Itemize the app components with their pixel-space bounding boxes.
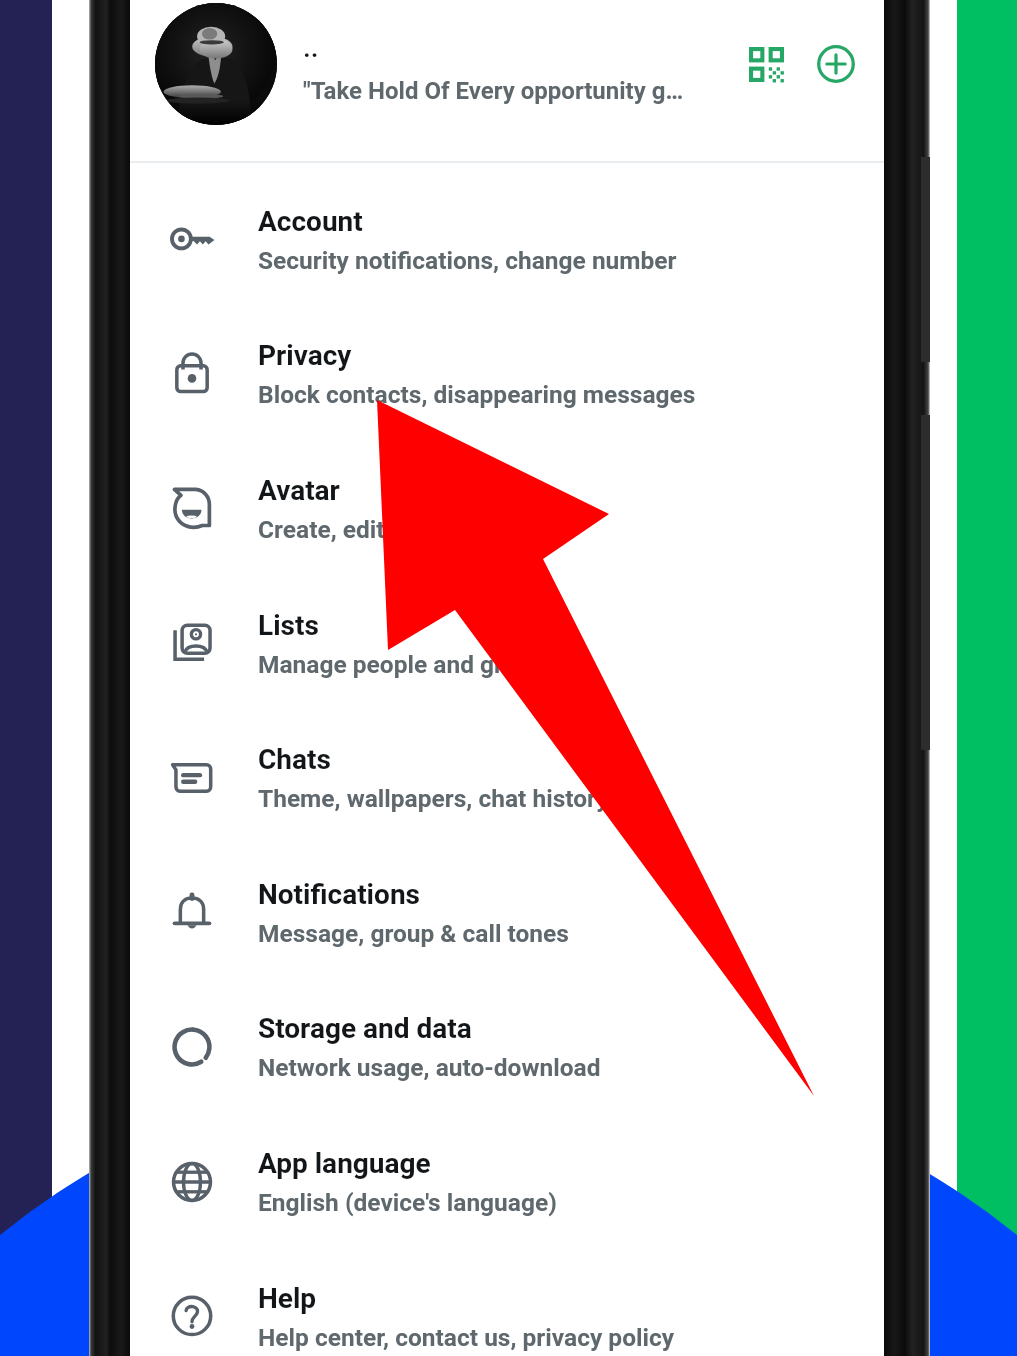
button[interactable]: Privacy [130,306,884,441]
staticText: Security notifications, change number [258,246,677,275]
button[interactable]: Account [130,172,884,307]
staticText: Account [258,205,363,238]
staticText: English (device's language) [258,1188,557,1217]
staticText: Avatar [258,474,340,507]
staticText: Create, edit, profile photo [258,515,537,544]
button[interactable]: Add account [800,28,872,100]
staticText: "Take Hold Of Every opportunity g… [303,77,684,105]
staticText: Storage and data [258,1012,472,1045]
staticText: .. [303,31,319,64]
button[interactable]: Storage and data [130,979,884,1114]
staticText: Block contacts, disappearing messages [258,380,696,409]
staticText: Notifications [258,878,420,911]
staticText: Lists [258,609,319,642]
staticText: Message, group & call tones [258,919,569,948]
button[interactable]: Help [130,1249,884,1356]
button[interactable]: Lists [130,576,884,711]
button[interactable]: Chats [130,710,884,845]
staticText: Network usage, auto-download [258,1053,601,1082]
staticText: Manage people and groups [258,650,557,679]
button[interactable]: QR code [730,28,802,100]
button[interactable]: .. [130,0,884,161]
button[interactable]: Notifications [130,845,884,980]
staticText: Chats [258,743,331,776]
staticText: Help [258,1282,317,1315]
button[interactable]: App language [130,1114,884,1249]
staticText: App language [258,1147,431,1180]
staticText: Help center, contact us, privacy policy [258,1323,675,1352]
button[interactable]: Avatar [130,441,884,576]
staticText: Theme, wallpapers, chat history [258,784,609,813]
staticText: Privacy [258,339,352,372]
